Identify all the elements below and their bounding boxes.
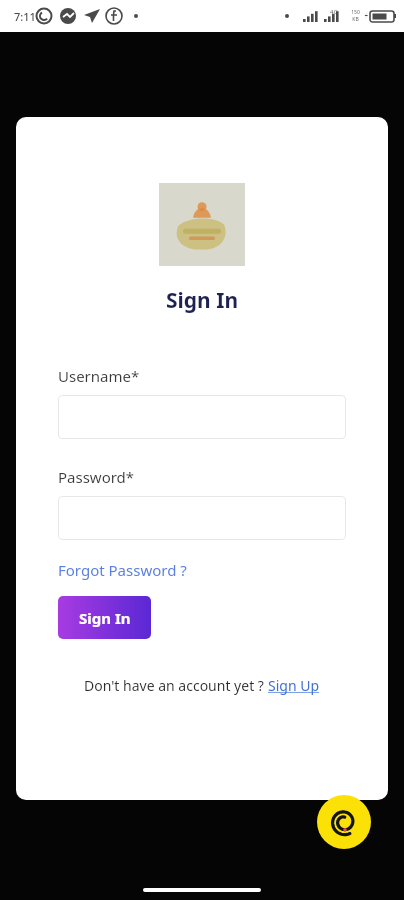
staticText: 150 KB	[351, 9, 360, 23]
staticText: Sign In	[16, 286, 388, 315]
staticText: Username*	[58, 366, 140, 386]
staticText: Don't have an account yet ?	[84, 676, 264, 695]
staticText: 4G	[330, 8, 338, 16]
staticText: Sign Up	[268, 676, 320, 695]
staticText: Sign In	[79, 608, 131, 628]
button[interactable]: Sign In	[58, 596, 151, 639]
button[interactable]	[58, 395, 346, 439]
staticText: Forgot Password ?	[58, 560, 187, 580]
button[interactable]: Sign Up	[268, 676, 320, 695]
button[interactable]: Assistant	[317, 795, 371, 849]
button[interactable]	[58, 496, 346, 540]
staticText: Password*	[58, 467, 135, 487]
button[interactable]: Forgot Password ?	[58, 560, 187, 580]
staticText: 7:11	[14, 9, 36, 24]
